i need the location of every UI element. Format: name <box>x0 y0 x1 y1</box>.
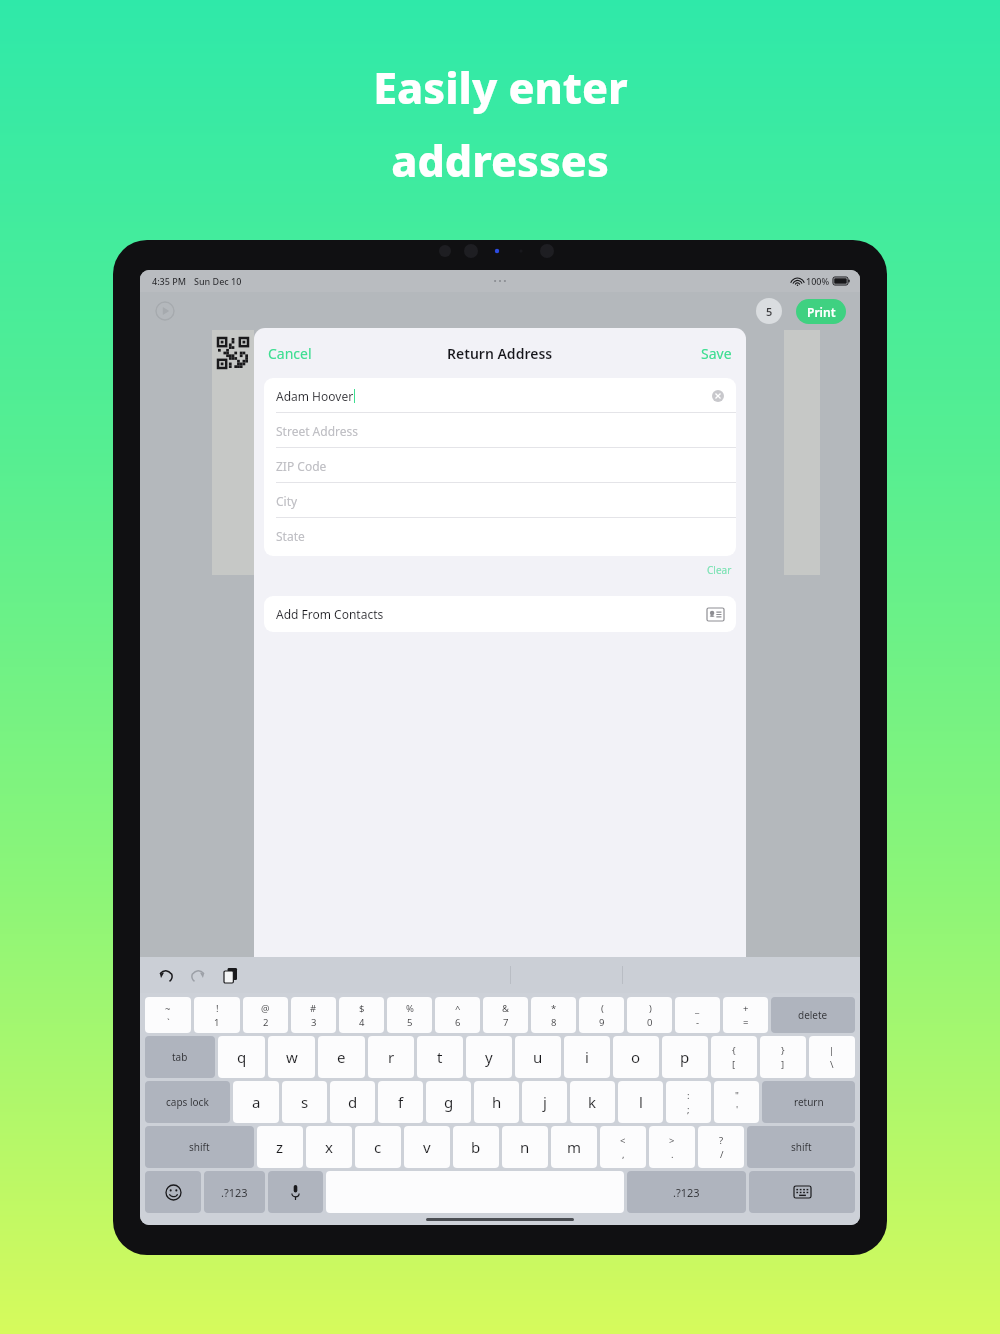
staticText: .?123 <box>221 1185 248 1200</box>
button[interactable]: & <box>483 997 528 1033</box>
button[interactable]: return <box>762 1081 855 1123</box>
button[interactable]: w <box>268 1036 315 1078</box>
button[interactable]: f <box>378 1081 423 1123</box>
staticText: ( <box>601 1002 604 1015</box>
staticText: < <box>620 1134 626 1147</box>
button[interactable]: ~ <box>145 997 191 1033</box>
button[interactable]: .?123 <box>627 1171 746 1213</box>
staticText: 8 <box>551 1016 557 1029</box>
button[interactable]: < <box>600 1126 646 1168</box>
button[interactable]: ^ <box>435 997 480 1033</box>
button[interactable]: s <box>282 1081 327 1123</box>
button[interactable]: a <box>233 1081 279 1123</box>
button[interactable]: u <box>515 1036 561 1078</box>
button[interactable]: Emoji <box>145 1171 201 1213</box>
button[interactable]: ) <box>627 997 672 1033</box>
button[interactable]: { <box>711 1036 757 1078</box>
staticText: ? <box>719 1134 724 1147</box>
button[interactable]: + <box>723 997 768 1033</box>
staticText: Print <box>807 304 836 320</box>
button[interactable]: ZIP Code <box>264 448 736 483</box>
staticText: 9 <box>599 1016 605 1029</box>
button[interactable]: caps lock <box>145 1081 230 1123</box>
staticText: w <box>286 1047 298 1067</box>
button[interactable]: Clear <box>707 563 732 577</box>
button[interactable]: Street Address <box>264 413 736 448</box>
button[interactable]: m <box>551 1126 597 1168</box>
button[interactable]: .?123 <box>204 1171 265 1213</box>
button[interactable]: ( <box>579 997 624 1033</box>
button[interactable]: v <box>404 1126 450 1168</box>
button[interactable]: } <box>760 1036 806 1078</box>
button[interactable]: $ <box>339 997 384 1033</box>
button[interactable]: tab <box>145 1036 215 1078</box>
button[interactable]: * <box>531 997 576 1033</box>
staticText: y <box>485 1047 493 1067</box>
staticText: 6 <box>455 1016 461 1029</box>
staticText: h <box>492 1092 502 1112</box>
button[interactable]: shift <box>145 1126 254 1168</box>
staticText: 7 <box>503 1016 509 1029</box>
button[interactable]: b <box>453 1126 499 1168</box>
button[interactable]: o <box>613 1036 659 1078</box>
button[interactable]: delete <box>771 997 855 1033</box>
staticText: i <box>585 1047 589 1067</box>
staticText: addresses <box>391 131 609 190</box>
button[interactable]: j <box>522 1081 567 1123</box>
button[interactable]: e <box>318 1036 365 1078</box>
button[interactable]: shift <box>747 1126 855 1168</box>
button[interactable]: # <box>291 997 336 1033</box>
button[interactable]: h <box>474 1081 519 1123</box>
button[interactable]: City <box>264 483 736 518</box>
button[interactable]: Save <box>701 344 732 363</box>
staticText: ) <box>649 1002 652 1015</box>
button[interactable]: r <box>368 1036 414 1078</box>
button[interactable]: t <box>417 1036 463 1078</box>
button[interactable]: x <box>306 1126 352 1168</box>
button[interactable]: | <box>809 1036 855 1078</box>
button[interactable]: Paste <box>218 963 242 987</box>
button[interactable]: @ <box>243 997 288 1033</box>
button[interactable]: > <box>649 1126 695 1168</box>
staticText: $ <box>359 1002 365 1015</box>
button[interactable]: l <box>618 1081 663 1123</box>
staticText: f <box>398 1092 404 1112</box>
button[interactable]: State <box>264 518 736 553</box>
button[interactable]: " <box>714 1081 759 1123</box>
button[interactable]: Add From Contacts <box>264 596 736 632</box>
button[interactable]: d <box>330 1081 375 1123</box>
button[interactable]: Cancel <box>268 344 312 363</box>
staticText: caps lock <box>166 1095 209 1109</box>
button[interactable]: c <box>355 1126 401 1168</box>
button[interactable]: i <box>564 1036 610 1078</box>
staticText: 0 <box>647 1016 653 1029</box>
button[interactable]: q <box>218 1036 265 1078</box>
staticText: Add From Contacts <box>276 606 384 622</box>
button[interactable]: p <box>662 1036 708 1078</box>
button[interactable]: g <box>426 1081 471 1123</box>
staticText: l <box>639 1092 643 1112</box>
button[interactable]: k <box>570 1081 615 1123</box>
button[interactable]: z <box>257 1126 303 1168</box>
staticText: \ <box>830 1058 834 1071</box>
button[interactable]: ! <box>194 997 240 1033</box>
staticText: = <box>743 1016 749 1029</box>
button[interactable]: Undo <box>154 963 178 987</box>
button[interactable]: Print <box>796 299 846 324</box>
button[interactable]: y <box>466 1036 512 1078</box>
staticText: % <box>406 1002 414 1015</box>
staticText: Save <box>701 344 732 363</box>
button[interactable]: 5 <box>756 298 782 324</box>
staticText: # <box>310 1002 317 1015</box>
button[interactable]: : <box>666 1081 711 1123</box>
button[interactable]: n <box>502 1126 548 1168</box>
button[interactable]: Redo <box>186 963 210 987</box>
button[interactable]: Hide keyboard <box>749 1171 855 1213</box>
button[interactable]: ? <box>698 1126 744 1168</box>
button[interactable]: Dictation <box>268 1171 323 1213</box>
button[interactable]: % <box>387 997 432 1033</box>
staticText: x <box>325 1137 333 1157</box>
button[interactable]: _ <box>675 997 720 1033</box>
button[interactable]: Adam Hoover <box>264 378 736 413</box>
